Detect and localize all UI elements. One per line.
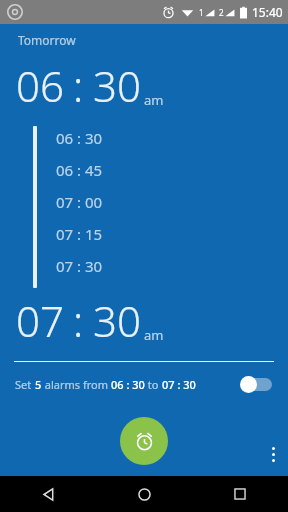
staticText: : bbox=[77, 192, 82, 212]
staticText: 30 bbox=[85, 256, 103, 276]
button[interactable]: 07 bbox=[56, 250, 288, 282]
staticText: 07 : 30 bbox=[162, 377, 196, 392]
staticText: 07 bbox=[16, 292, 64, 349]
staticText: 06 bbox=[56, 160, 74, 180]
staticText: : bbox=[73, 292, 84, 349]
staticText: am bbox=[144, 326, 164, 344]
staticText: 5 bbox=[35, 377, 42, 392]
button[interactable]: 06 bbox=[56, 122, 288, 154]
button[interactable]: Recent apps bbox=[192, 476, 288, 512]
staticText: 1 bbox=[199, 7, 204, 18]
button[interactable]: Toggle alarms bbox=[239, 373, 275, 395]
staticText: 06 : 30 bbox=[111, 377, 145, 392]
staticText: 2 bbox=[219, 7, 224, 18]
staticText: Tomorrow bbox=[18, 32, 76, 48]
staticText: Set bbox=[15, 377, 35, 392]
staticText: 00 bbox=[85, 192, 103, 212]
staticText: : bbox=[77, 224, 82, 244]
button[interactable]: 07 bbox=[56, 218, 288, 250]
staticText: : bbox=[77, 128, 82, 148]
button[interactable]: Home bbox=[96, 476, 192, 512]
staticText: 45 bbox=[85, 160, 103, 180]
button[interactable]: Add alarm bbox=[120, 417, 168, 465]
button[interactable]: Back bbox=[0, 476, 96, 512]
staticText: : bbox=[77, 160, 82, 180]
button[interactable]: 06 bbox=[56, 154, 288, 186]
staticText: 06 bbox=[56, 128, 74, 148]
staticText: : bbox=[73, 57, 84, 114]
button[interactable]: More options bbox=[262, 440, 284, 468]
staticText: 30 bbox=[93, 292, 141, 349]
staticText: 07 bbox=[56, 256, 74, 276]
button[interactable]: 07 bbox=[56, 186, 288, 218]
staticText: to bbox=[145, 377, 162, 392]
staticText: am bbox=[144, 91, 164, 109]
staticText: 30 bbox=[85, 128, 103, 148]
staticText: 07 bbox=[56, 192, 74, 212]
staticText: 06 bbox=[16, 57, 64, 114]
staticText: 15:40 bbox=[252, 4, 283, 20]
staticText: : bbox=[77, 256, 82, 276]
staticText: 15 bbox=[85, 224, 103, 244]
staticText: 07 bbox=[56, 224, 74, 244]
staticText: 30 bbox=[93, 57, 141, 114]
staticText: alarms from bbox=[42, 377, 111, 392]
